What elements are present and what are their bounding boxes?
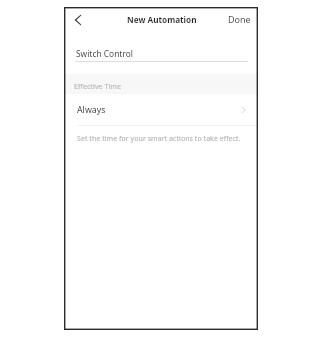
staticText: Effective Time [74, 82, 121, 92]
button[interactable]: Always [64, 93, 258, 125]
button[interactable]: Back [64, 7, 91, 29]
button[interactable]: Done [222, 6, 257, 32]
staticText: Done [228, 13, 251, 25]
staticText: Switch Control [76, 48, 133, 59]
staticText: Set the time for your smart actions to t… [77, 134, 241, 144]
staticText: Always [77, 104, 106, 116]
staticText: New Automation [127, 14, 197, 25]
button[interactable]: Switch Control [75, 40, 248, 62]
